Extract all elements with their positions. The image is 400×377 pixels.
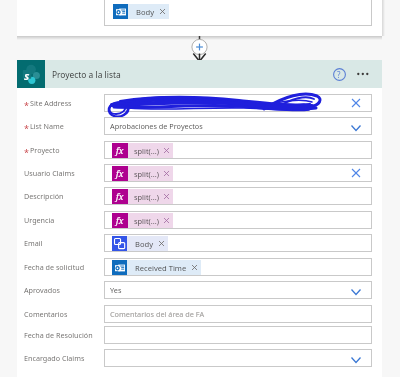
staticText: fx bbox=[116, 145, 124, 157]
button[interactable]: fx bbox=[104, 141, 372, 159]
button[interactable]: Usuario Claims bbox=[24, 163, 104, 182]
staticText: fx bbox=[116, 191, 124, 203]
button[interactable]: Comentarios bbox=[24, 304, 104, 323]
staticText: split(...) bbox=[134, 146, 159, 156]
button[interactable]: Yes bbox=[104, 281, 372, 299]
staticText: split(...) bbox=[134, 169, 159, 179]
button[interactable]: More options bbox=[355, 65, 373, 83]
button[interactable]: Received Time bbox=[112, 260, 201, 275]
staticText: Comentarios bbox=[24, 309, 68, 319]
staticText: * bbox=[24, 99, 29, 111]
button[interactable]: Open list bbox=[347, 282, 364, 299]
button[interactable]: fx bbox=[112, 143, 173, 158]
button[interactable] bbox=[104, 94, 372, 112]
staticText: Usuario Claims bbox=[24, 168, 75, 178]
staticText: * bbox=[24, 146, 29, 158]
button[interactable]: fx bbox=[104, 187, 372, 205]
button[interactable]: Received Time bbox=[104, 258, 372, 276]
button[interactable]: * bbox=[24, 93, 104, 112]
button[interactable]: Email bbox=[24, 233, 104, 252]
button[interactable]: Clear bbox=[348, 165, 364, 181]
staticText: Aprobaciones de Proyectos bbox=[110, 121, 203, 131]
staticText: Aprovados bbox=[24, 285, 60, 295]
staticText: Comentarios del área de FA bbox=[110, 309, 205, 319]
button[interactable]: Fecha de solicitud bbox=[24, 257, 104, 276]
button[interactable]: Open list bbox=[347, 350, 364, 367]
staticText: S bbox=[24, 70, 30, 83]
button[interactable]: S bbox=[17, 60, 382, 88]
button[interactable]: fx bbox=[112, 189, 173, 204]
staticText: Body bbox=[136, 7, 155, 17]
button[interactable]: fx bbox=[112, 166, 173, 181]
button[interactable]: Clear bbox=[348, 95, 364, 111]
staticText: split(...) bbox=[134, 216, 159, 226]
staticText: Urgencia bbox=[24, 215, 55, 225]
staticText: fx bbox=[116, 168, 124, 180]
staticText: Proyecto a la lista bbox=[52, 69, 121, 80]
button[interactable] bbox=[104, 349, 372, 367]
button[interactable]: fx bbox=[104, 164, 372, 182]
staticText: Yes bbox=[110, 285, 122, 295]
button[interactable]: fx bbox=[112, 213, 173, 228]
staticText: Encargado Claims bbox=[24, 353, 85, 363]
staticText: split(...) bbox=[134, 192, 159, 202]
staticText: Proyecto bbox=[30, 145, 60, 155]
button[interactable]: Open list bbox=[347, 118, 364, 135]
staticText: Received Time bbox=[135, 263, 187, 273]
button[interactable]: Descripción bbox=[24, 186, 104, 205]
button[interactable]: * bbox=[24, 116, 104, 135]
staticText: Email bbox=[24, 238, 43, 248]
button[interactable]: Help bbox=[330, 65, 348, 83]
button[interactable]: Fecha de Resolución bbox=[24, 325, 104, 344]
staticText: Body bbox=[135, 239, 154, 249]
button[interactable]: Urgencia bbox=[24, 210, 104, 229]
staticText: Fecha de Resolución bbox=[24, 330, 93, 340]
button[interactable]: Aprovados bbox=[24, 280, 104, 299]
staticText: fx bbox=[116, 215, 124, 227]
button[interactable]: Comentarios del área de FA bbox=[104, 305, 372, 323]
button[interactable]: Body bbox=[112, 236, 168, 251]
button[interactable]: Encargado Claims bbox=[24, 348, 104, 367]
staticText: Descripción bbox=[24, 191, 64, 201]
staticText: Site Address bbox=[30, 98, 72, 108]
button[interactable]: Body bbox=[113, 4, 169, 19]
staticText: List Name bbox=[30, 121, 64, 131]
button[interactable]: * bbox=[24, 140, 104, 159]
button[interactable]: fx bbox=[104, 211, 372, 229]
staticText: * bbox=[24, 122, 29, 134]
staticText: ? bbox=[337, 69, 341, 80]
button[interactable]: Aprobaciones de Proyectos bbox=[104, 117, 372, 135]
staticText: Fecha de solicitud bbox=[24, 262, 85, 272]
button[interactable]: Body bbox=[104, 234, 372, 252]
button[interactable] bbox=[104, 326, 372, 344]
